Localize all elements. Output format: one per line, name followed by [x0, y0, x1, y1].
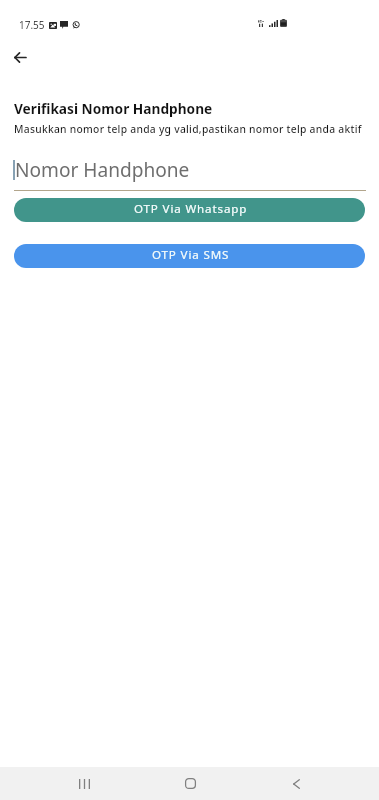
staticText: OTP Via Whatsapp [134, 201, 248, 217]
button[interactable]: OTP Via SMS [14, 244, 365, 268]
button[interactable]: Back [0, 37, 40, 77]
button[interactable]: Home [168, 767, 213, 800]
button[interactable]: Nomor Handphone [0, 152, 379, 191]
staticText: OTP Via SMS [152, 247, 230, 263]
staticText: 17.55 [19, 18, 45, 32]
staticText: Nomor Handphone [15, 157, 190, 183]
button[interactable]: Recent apps [62, 767, 107, 800]
staticText: Verifikasi Nomor Handphone [14, 99, 213, 118]
staticText: Masukkan nomor telp anda yg valid,pastik… [14, 122, 362, 136]
button[interactable]: OTP Via Whatsapp [14, 198, 365, 222]
button[interactable]: Back [274, 767, 319, 800]
